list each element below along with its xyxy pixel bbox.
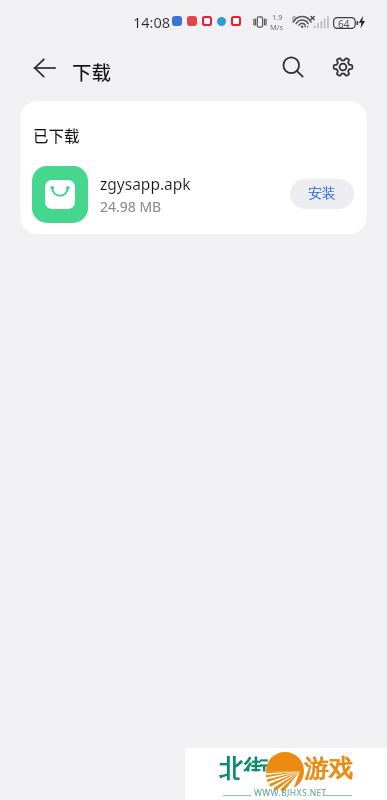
staticText: 64 <box>338 17 350 31</box>
staticText: zgysapp.apk <box>100 173 191 194</box>
button[interactable]: Settings <box>323 47 363 87</box>
staticText: 1.9 <box>272 12 283 22</box>
staticText: 已下载 <box>33 124 80 146</box>
staticText: 24.98 MB <box>100 197 162 216</box>
button[interactable]: 安装 <box>290 179 354 209</box>
button[interactable]: Search <box>273 47 313 87</box>
button[interactable]: Back <box>24 48 64 88</box>
staticText: 北街 <box>219 753 268 784</box>
staticText: M/s <box>270 22 284 32</box>
staticText: 6 <box>292 13 297 23</box>
staticText: 游戏 <box>304 753 353 784</box>
staticText: 安装 <box>308 185 336 203</box>
staticText: 下载 <box>72 57 112 85</box>
staticText: WWW.BJHXS.NET <box>254 787 327 799</box>
button[interactable]: zgysapp.apk <box>20 164 367 224</box>
staticText: 14:08 <box>133 12 171 32</box>
